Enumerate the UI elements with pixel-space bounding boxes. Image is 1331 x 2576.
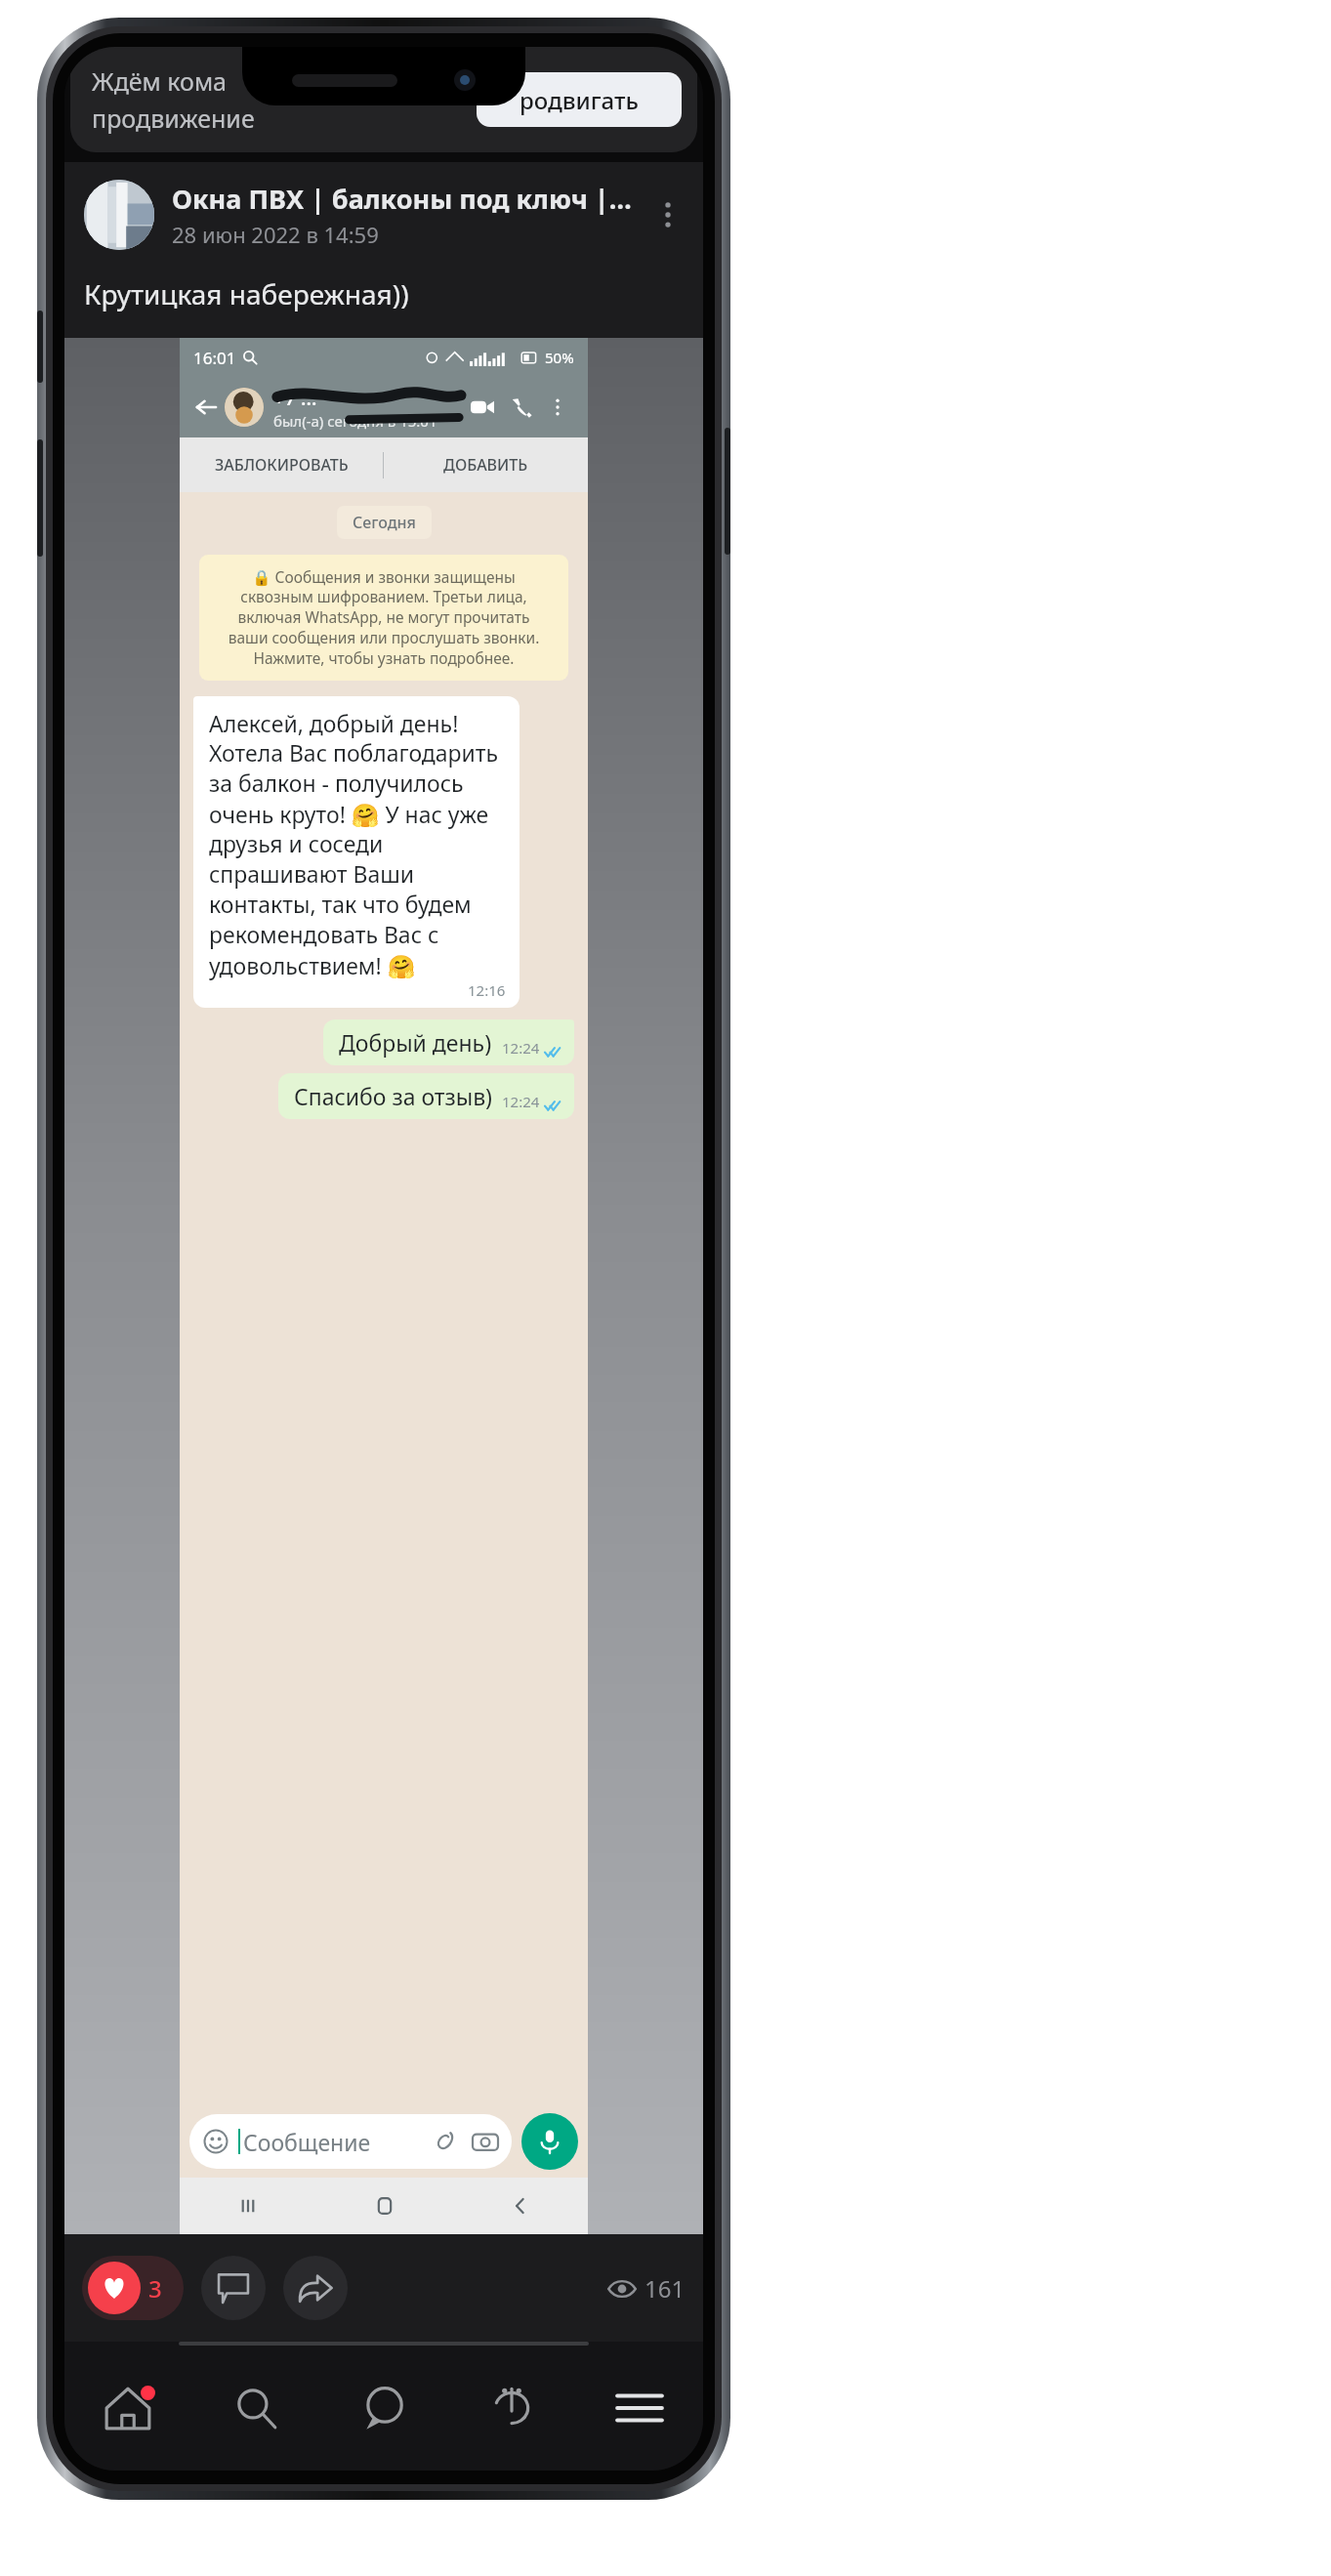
button[interactable]: Clips: [447, 2346, 575, 2471]
staticText: ДОБАВИТЬ: [443, 454, 528, 476]
button[interactable]: Окна ПВХ | балконы под ключ |д…: [84, 180, 691, 250]
staticText: Сегодня: [353, 512, 416, 533]
button[interactable]: 3: [88, 2256, 162, 2320]
button[interactable]: Home: [64, 2346, 191, 2471]
button[interactable]: Menu: [575, 2346, 703, 2471]
staticText: +7 ...: [273, 385, 322, 411]
staticText: родвигать: [520, 84, 639, 116]
button[interactable]: Back: [452, 2178, 588, 2234]
button[interactable]: Messages: [319, 2346, 447, 2471]
button[interactable]: родвигать: [477, 72, 682, 127]
button[interactable]: Сообщение: [203, 2114, 498, 2169]
staticText: Добрый день): [339, 1027, 492, 1058]
button[interactable]: More options: [645, 191, 691, 238]
staticText: 161: [645, 2272, 686, 2305]
staticText: Крутицкая набережная)): [84, 275, 409, 312]
staticText: 3: [148, 2272, 162, 2305]
button[interactable]: ДОБАВИТЬ: [384, 437, 588, 492]
button[interactable]: Voice message: [521, 2113, 578, 2170]
staticText: 12:24: [502, 1092, 540, 1111]
staticText: 🔒 Сообщения и звонки защищены сквозным ш…: [217, 566, 551, 669]
staticText: 12:16: [468, 980, 506, 1000]
staticText: Сообщение: [243, 2127, 371, 2157]
staticText: Ждём кома: [92, 64, 228, 98]
button[interactable]: Recents: [180, 2178, 316, 2234]
button[interactable]: Search: [191, 2346, 319, 2471]
button[interactable]: Back: [189, 391, 223, 424]
staticText: был(-а) сегодня в 15:01: [273, 411, 437, 431]
button[interactable]: Menu: [541, 391, 574, 424]
staticText: Окна ПВХ | балконы под ключ |д…: [172, 181, 645, 217]
staticText: Алексей, добрый день! Хотела Вас поблаго…: [209, 708, 506, 980]
staticText: 50%: [545, 348, 574, 367]
button[interactable]: Comment: [201, 2256, 266, 2320]
staticText: ЗАБЛОКИРОВАТЬ: [215, 454, 349, 476]
staticText: 16:01: [193, 347, 236, 369]
staticText: 12:24: [502, 1038, 540, 1058]
button[interactable]: Home: [316, 2178, 452, 2234]
button[interactable]: Share: [283, 2256, 348, 2320]
staticText: Спасибо за отзыв): [294, 1081, 492, 1111]
staticText: продвижение: [92, 102, 255, 135]
button[interactable]: Call: [502, 388, 541, 427]
button[interactable]: ЗАБЛОКИРОВАТЬ: [180, 437, 383, 492]
staticText: 28 июн 2022 в 14:59: [172, 220, 379, 249]
button[interactable]: Video call: [463, 388, 502, 427]
button[interactable]: 161: [607, 2272, 686, 2305]
